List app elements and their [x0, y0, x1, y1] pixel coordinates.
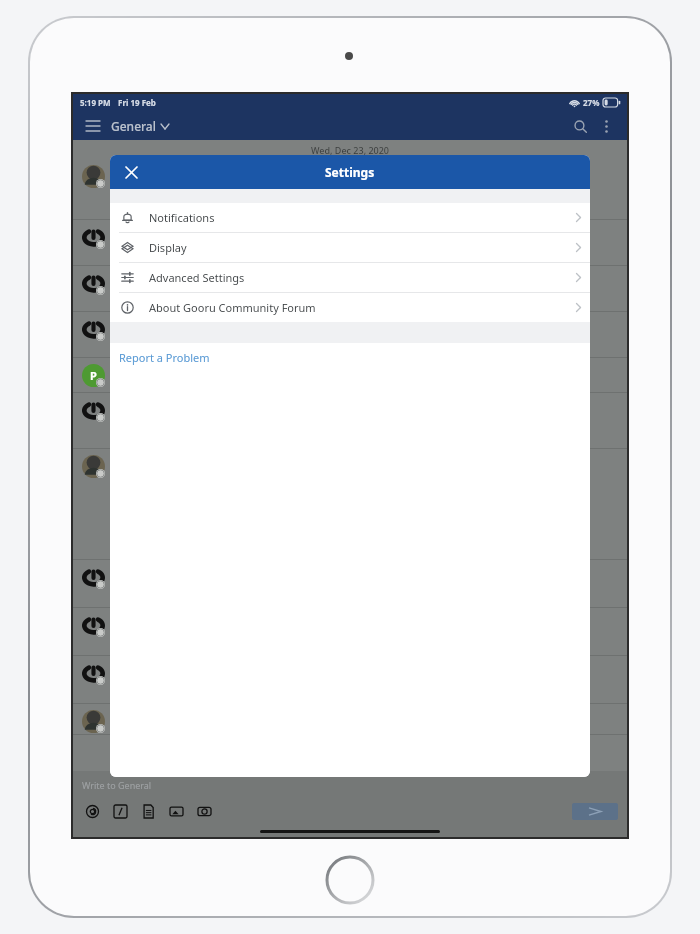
staticText: Display: [149, 240, 187, 255]
button[interactable]: File: [138, 801, 159, 822]
button[interactable]: Image: [166, 801, 187, 822]
button[interactable]: [73, 560, 627, 607]
staticText: 5:19 PM: [80, 97, 111, 108]
staticText: Report a Problem: [119, 350, 210, 365]
button[interactable]: [73, 220, 627, 265]
button[interactable]: Format: [110, 801, 131, 822]
button[interactable]: [73, 312, 627, 357]
button[interactable]: Mention: [82, 801, 103, 822]
button[interactable]: More options: [594, 114, 618, 138]
staticText: 27%: [583, 97, 600, 108]
staticText: Settings: [325, 164, 375, 180]
button[interactable]: Notifications: [110, 203, 590, 232]
button[interactable]: Search: [568, 114, 592, 138]
button[interactable]: [73, 449, 627, 559]
button[interactable]: Close: [120, 161, 142, 183]
staticText: Wed, Dec 23, 2020: [311, 144, 390, 156]
button[interactable]: Send: [572, 803, 618, 820]
button[interactable]: Report a Problem: [110, 343, 590, 372]
button[interactable]: P: [73, 358, 627, 392]
button[interactable]: Display: [110, 233, 590, 262]
button[interactable]: Advanced Settings: [110, 263, 590, 292]
button[interactable]: [73, 656, 627, 703]
button[interactable]: [73, 608, 627, 655]
button[interactable]: [73, 393, 627, 448]
staticText: Write to General: [82, 779, 152, 791]
button[interactable]: [73, 159, 627, 219]
staticText: Notifications: [149, 210, 215, 225]
staticText: General: [111, 118, 156, 134]
staticText: About Gooru Community Forum: [149, 300, 316, 315]
staticText: Advanced Settings: [149, 270, 245, 285]
staticText: Fri 19 Feb: [118, 97, 156, 108]
button[interactable]: Camera: [194, 801, 215, 822]
button[interactable]: About Gooru Community Forum: [110, 293, 590, 322]
button[interactable]: General: [111, 118, 169, 134]
button[interactable]: [73, 704, 627, 734]
button[interactable]: [73, 266, 627, 311]
button[interactable]: Menu: [82, 115, 104, 137]
staticText: P: [90, 368, 97, 383]
